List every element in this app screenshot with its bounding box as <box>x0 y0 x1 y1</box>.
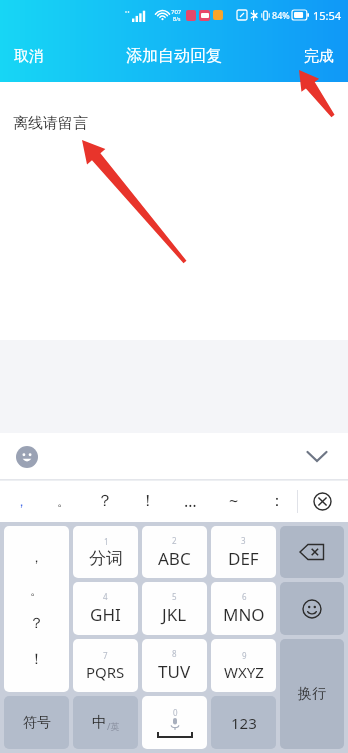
staticText: ABC <box>158 547 191 570</box>
staticText: 1 <box>104 536 109 547</box>
staticText: 7 <box>103 650 108 661</box>
staticText: ？ <box>97 491 113 511</box>
staticText: 9 <box>242 650 247 661</box>
staticText: GHI <box>90 603 121 626</box>
staticText: DEF <box>228 547 259 570</box>
staticText: 5 <box>172 591 177 602</box>
staticText: PQRS <box>86 662 125 682</box>
button[interactable]: ？ <box>84 480 126 522</box>
button[interactable]: 符号 <box>4 696 69 749</box>
button[interactable]: ， <box>0 480 42 522</box>
staticText: ？ <box>29 614 44 633</box>
staticText: 添加自动回复 <box>126 46 222 66</box>
staticText: 2 <box>172 535 177 546</box>
staticText: 离线请留言 <box>13 114 88 133</box>
staticText: 6 <box>242 591 247 602</box>
button[interactable]: Backspace <box>280 526 344 578</box>
button[interactable]: ！ <box>126 480 169 522</box>
staticText: WXYZ <box>224 662 264 682</box>
staticText: 4 <box>103 591 108 602</box>
staticText: 中 <box>92 713 107 732</box>
staticText: ， <box>30 549 43 565</box>
button[interactable]: 取消 <box>0 37 58 76</box>
button[interactable]: 完成 <box>290 37 348 76</box>
staticText: ~ <box>229 490 239 512</box>
staticText: ！ <box>29 650 44 669</box>
button[interactable]: 8 <box>142 639 207 692</box>
staticText: 15:54 <box>313 8 342 23</box>
staticText: 。 <box>57 493 70 509</box>
button[interactable]: Emoji <box>10 440 44 474</box>
staticText: B/s <box>173 16 181 23</box>
button[interactable]: … <box>169 480 212 522</box>
staticText: JKL <box>162 603 187 626</box>
button[interactable]: 123 <box>211 696 276 749</box>
staticText: 。 <box>30 582 43 598</box>
button[interactable]: 中 <box>73 696 138 749</box>
staticText: 0 <box>173 707 178 718</box>
staticText: 分词 <box>89 548 123 569</box>
button[interactable]: 。 <box>42 480 84 522</box>
staticText: 123 <box>231 713 257 733</box>
button[interactable]: 5 <box>142 582 207 635</box>
staticText: … <box>184 490 197 512</box>
staticText: TUV <box>158 660 191 683</box>
button[interactable]: 换行 <box>280 639 344 749</box>
button[interactable]: 7 <box>73 639 138 692</box>
staticText: /英 <box>107 720 120 732</box>
button[interactable]: 4 <box>73 582 138 635</box>
button[interactable]: Emoji <box>280 582 344 635</box>
staticText: 符号 <box>23 714 51 732</box>
button[interactable]: 1 <box>73 526 138 578</box>
staticText: ： <box>269 491 285 511</box>
staticText: 取消 <box>14 47 44 66</box>
button[interactable]: 2 <box>142 526 207 578</box>
button[interactable]: ~ <box>212 480 255 522</box>
staticText: MNO <box>223 603 265 626</box>
staticText: ， <box>15 493 28 509</box>
button[interactable]: Collapse keyboard <box>300 444 334 469</box>
button[interactable]: 0 <box>142 696 207 749</box>
staticText: 707 <box>171 8 182 16</box>
staticText: 换行 <box>298 685 326 703</box>
staticText: 84% <box>272 9 290 21</box>
button[interactable]: 6 <box>211 582 276 635</box>
staticText: 8 <box>172 648 177 659</box>
staticText: 完成 <box>304 47 334 66</box>
button[interactable]: ： <box>255 480 298 522</box>
button[interactable]: Clear <box>308 487 337 516</box>
button[interactable]: ， <box>4 526 69 692</box>
button[interactable]: 3 <box>211 526 276 578</box>
staticText: 3 <box>241 535 246 546</box>
button[interactable]: 9 <box>211 639 276 692</box>
staticText: ！ <box>140 491 156 511</box>
